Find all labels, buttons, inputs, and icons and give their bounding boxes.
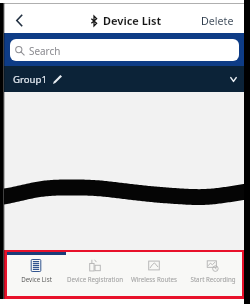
button[interactable]: Start Recording <box>183 255 242 296</box>
staticText: Start Recording <box>190 275 236 283</box>
button[interactable]: Search <box>10 39 239 61</box>
staticText: Delete <box>201 14 234 29</box>
button[interactable]: Back <box>6 7 32 33</box>
staticText: Device Registration <box>67 275 123 283</box>
button[interactable]: Device List <box>7 255 65 296</box>
staticText: Wireless Routes <box>131 275 177 283</box>
button[interactable]: Delete <box>190 8 245 35</box>
staticText: Group1 <box>13 73 47 86</box>
button[interactable]: Device Registration <box>65 255 124 296</box>
staticText: Device List <box>103 13 162 28</box>
button[interactable]: Group1 <box>4 66 245 92</box>
button[interactable]: Wireless Routes <box>124 255 183 296</box>
staticText: Device List <box>21 275 52 283</box>
staticText: Search <box>29 44 61 57</box>
